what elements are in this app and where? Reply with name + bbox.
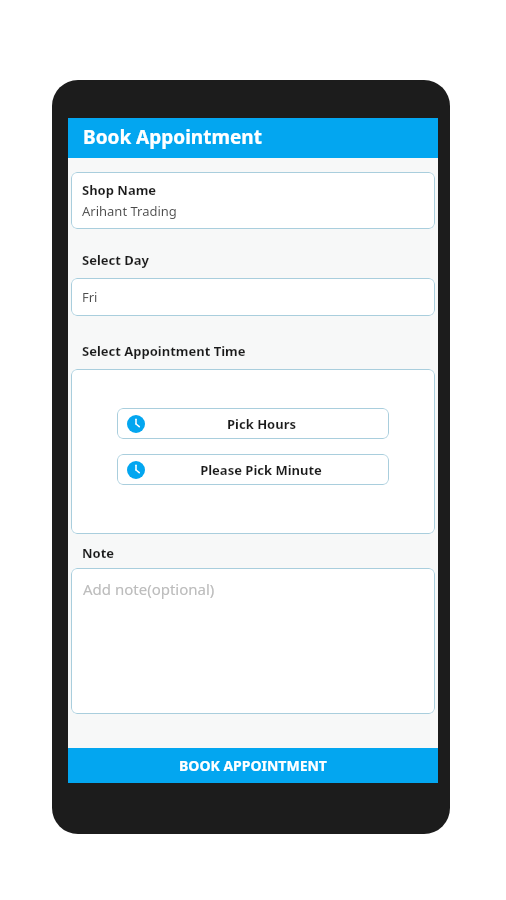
staticText: Fri xyxy=(82,288,98,306)
staticText: Arihant Trading xyxy=(82,202,177,220)
staticText: Book Appointment xyxy=(83,124,262,150)
staticText: Add note(optional) xyxy=(83,579,215,599)
staticText: Select Appointment Time xyxy=(82,342,246,360)
button[interactable]: BOOK APPOINTMENT xyxy=(68,748,438,783)
button[interactable]: Pick hours xyxy=(117,408,389,439)
staticText: Pick Hours xyxy=(227,415,296,433)
button[interactable]: Pick minutes xyxy=(117,454,389,485)
staticText: Select Day xyxy=(82,251,150,269)
button[interactable]: Add note(optional) xyxy=(71,568,435,714)
staticText: BOOK APPOINTMENT xyxy=(179,756,327,775)
staticText: Note xyxy=(82,544,115,562)
button[interactable]: Fri xyxy=(71,278,435,316)
staticText: Shop Name xyxy=(82,181,157,199)
staticText: Please Pick Minute xyxy=(200,461,322,479)
button[interactable]: Shop Name xyxy=(71,172,435,229)
